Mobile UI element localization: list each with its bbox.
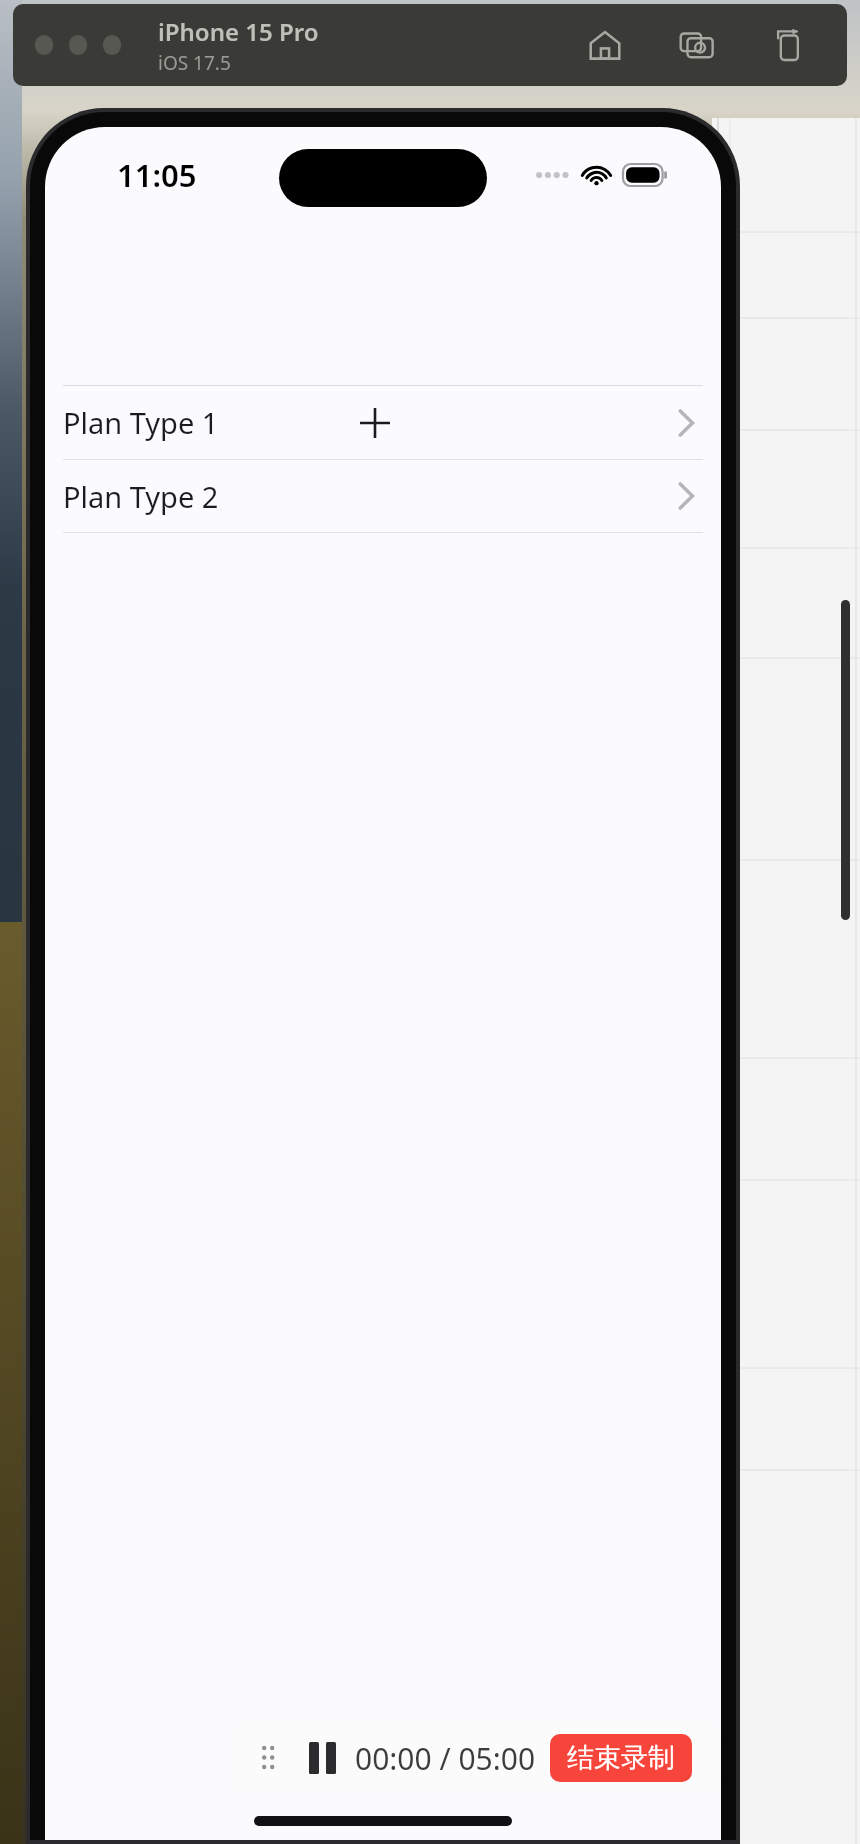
button[interactable]: Window control (35, 35, 53, 55)
button[interactable]: 结束录制 (550, 1734, 692, 1782)
button[interactable]: Add (352, 400, 398, 446)
button[interactable]: Plan Type 2 (45, 460, 721, 532)
button[interactable]: Home (583, 23, 627, 67)
button[interactable]: Pause (299, 1735, 345, 1781)
staticText: iPhone 15 Pro (158, 15, 319, 48)
staticText: 11:05 (117, 154, 197, 196)
staticText: 结束录制 (567, 1741, 675, 1775)
button[interactable]: Window control (103, 35, 121, 55)
button[interactable]: Screenshot (675, 23, 719, 67)
button[interactable]: Plan Type 1 (45, 386, 721, 459)
staticText: Plan Type 2 (63, 477, 219, 516)
button[interactable]: Open Plan Type 1 (665, 402, 707, 444)
button[interactable]: Drag handle (255, 1736, 281, 1780)
button[interactable]: Open Plan Type 2 (665, 475, 707, 517)
button[interactable]: Window control (69, 35, 87, 55)
staticText: Plan Type 1 (63, 403, 219, 442)
staticText: iOS 17.5 (158, 50, 231, 76)
button[interactable]: Rotate (767, 23, 811, 67)
staticText: 00:00 / 05:00 (355, 1738, 536, 1779)
